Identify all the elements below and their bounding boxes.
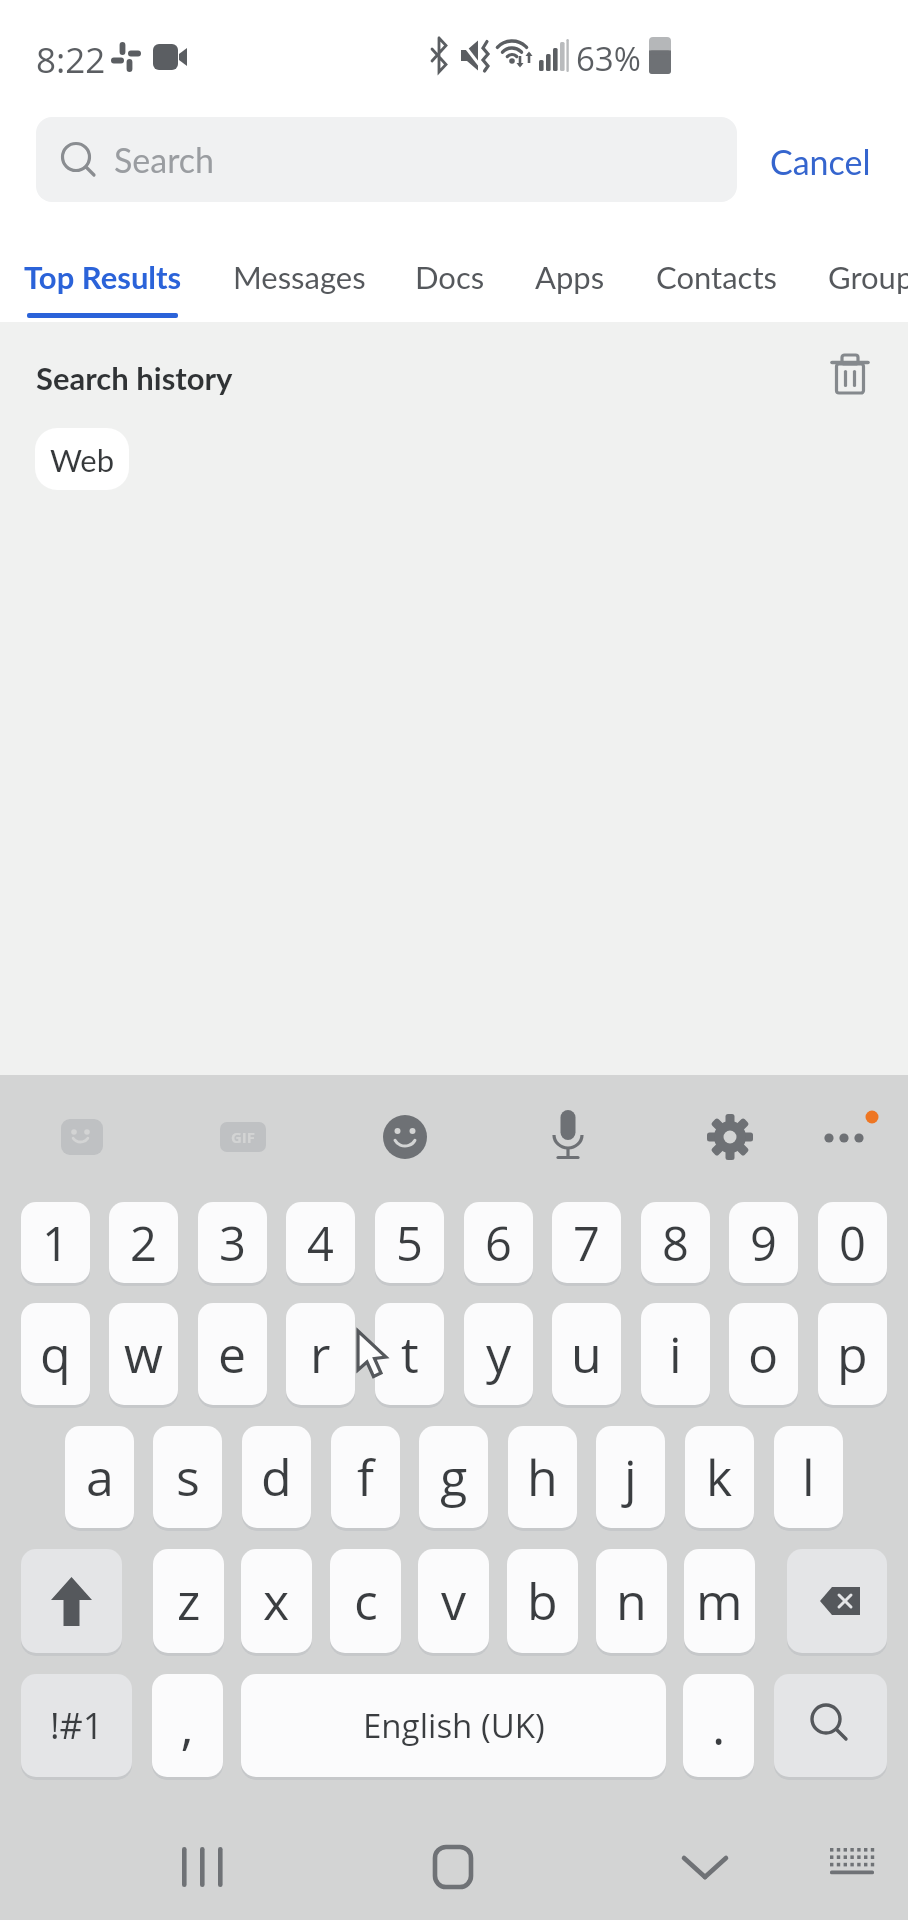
button[interactable]	[818, 1836, 884, 1900]
button[interactable]: 9	[729, 1202, 798, 1283]
staticText: 63%	[576, 36, 641, 78]
button[interactable]: m	[684, 1549, 755, 1653]
button[interactable]: n	[596, 1549, 667, 1653]
staticText: q	[40, 1320, 71, 1388]
staticText: c	[354, 1567, 378, 1635]
button[interactable]: a	[65, 1426, 134, 1528]
staticText: 1	[42, 1211, 69, 1275]
button[interactable]: q	[21, 1303, 90, 1405]
button[interactable]: e	[198, 1303, 267, 1405]
staticText: 6	[485, 1211, 512, 1275]
button[interactable]: c	[330, 1549, 401, 1653]
button[interactable]: 1	[21, 1202, 90, 1283]
button[interactable]: !#1	[21, 1674, 132, 1777]
staticText: Cancel	[770, 141, 871, 182]
staticText: 8:22	[36, 36, 106, 78]
button[interactable]: Contacts	[650, 250, 782, 302]
staticText: 0	[839, 1211, 866, 1275]
staticText: v	[441, 1567, 467, 1635]
staticText: Search history	[36, 359, 233, 396]
button[interactable]: i	[641, 1303, 710, 1405]
staticText: 5	[396, 1211, 423, 1275]
button[interactable]: Messages	[228, 250, 370, 302]
button[interactable]: Apps	[530, 250, 610, 302]
button[interactable]	[774, 1674, 887, 1777]
button[interactable]: y	[464, 1303, 533, 1405]
button[interactable]: l	[774, 1426, 843, 1528]
staticText: o	[748, 1320, 779, 1388]
button[interactable]: .	[683, 1674, 754, 1777]
button[interactable]: p	[818, 1303, 887, 1405]
button[interactable]	[705, 1112, 755, 1162]
button[interactable]: x	[241, 1549, 312, 1653]
button[interactable]: 5	[375, 1202, 444, 1283]
staticText: u	[571, 1320, 602, 1388]
button[interactable]: Top Results	[20, 250, 185, 302]
staticText: Top Results	[24, 258, 182, 295]
staticText: GIF	[231, 1127, 256, 1147]
staticText: n	[616, 1567, 647, 1635]
button[interactable]: u	[552, 1303, 621, 1405]
staticText: 8	[662, 1211, 689, 1275]
staticText: i	[669, 1320, 682, 1388]
button[interactable]	[665, 1830, 745, 1905]
button[interactable]: t	[375, 1303, 444, 1405]
button[interactable]: GIF	[218, 1112, 268, 1162]
button[interactable]: 8	[641, 1202, 710, 1283]
staticText: m	[696, 1567, 743, 1635]
button[interactable]: Groups	[828, 250, 908, 302]
staticText: b	[527, 1567, 558, 1635]
button[interactable]: 4	[286, 1202, 355, 1283]
staticText: Messages	[233, 258, 366, 295]
button[interactable]: f	[331, 1426, 400, 1528]
staticText: e	[218, 1320, 247, 1388]
button[interactable]	[160, 1830, 250, 1905]
button[interactable]	[380, 1112, 430, 1162]
staticText: 7	[573, 1211, 600, 1275]
button[interactable]: ,	[152, 1674, 223, 1777]
button[interactable]: w	[109, 1303, 178, 1405]
button[interactable]: d	[242, 1426, 311, 1528]
button[interactable]: h	[508, 1426, 577, 1528]
button[interactable]: o	[729, 1303, 798, 1405]
staticText: Docs	[415, 258, 485, 295]
button[interactable]: 6	[464, 1202, 533, 1283]
button[interactable]: 7	[552, 1202, 621, 1283]
button[interactable]: v	[418, 1549, 489, 1653]
button[interactable]: Web	[35, 428, 129, 490]
button[interactable]	[820, 1104, 886, 1166]
button[interactable]: g	[419, 1426, 488, 1528]
button[interactable]: 2	[109, 1202, 178, 1283]
staticText: p	[837, 1320, 868, 1388]
staticText: 9	[750, 1211, 777, 1275]
staticText: Search	[114, 139, 215, 180]
staticText: Web	[50, 441, 115, 478]
staticText: f	[357, 1443, 374, 1511]
button[interactable]	[57, 1112, 107, 1162]
button[interactable]	[543, 1108, 593, 1166]
button[interactable]: 3	[198, 1202, 267, 1283]
button[interactable]: 0	[818, 1202, 887, 1283]
staticText: English (UK)	[363, 1703, 545, 1748]
button[interactable]: k	[685, 1426, 754, 1528]
button[interactable]	[826, 350, 874, 398]
staticText: s	[176, 1443, 200, 1511]
button[interactable]: b	[507, 1549, 578, 1653]
button[interactable]: z	[153, 1549, 224, 1653]
button[interactable]	[415, 1830, 495, 1905]
staticText: h	[527, 1443, 558, 1511]
staticText: Contacts	[656, 258, 777, 295]
staticText: 3	[219, 1211, 246, 1275]
button[interactable]: j	[596, 1426, 665, 1528]
button[interactable]: Cancel	[756, 130, 884, 192]
button[interactable]: r	[286, 1303, 355, 1405]
staticText: z	[177, 1567, 201, 1635]
staticText: k	[706, 1443, 733, 1511]
button[interactable]: Docs	[410, 250, 490, 302]
button[interactable]: Search	[36, 117, 737, 202]
button[interactable]: s	[153, 1426, 222, 1528]
button[interactable]	[21, 1549, 122, 1653]
staticText: 4	[307, 1211, 334, 1275]
button[interactable]	[787, 1549, 887, 1653]
button[interactable]: English (UK)	[241, 1674, 666, 1777]
